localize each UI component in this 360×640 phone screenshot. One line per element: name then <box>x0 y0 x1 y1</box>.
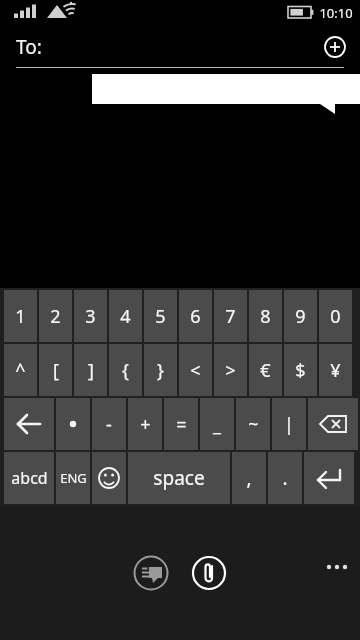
staticText: € <box>260 358 271 383</box>
staticText: abcd <box>11 467 48 489</box>
button[interactable]: 9 <box>284 290 317 342</box>
button[interactable]: 8 <box>249 290 282 342</box>
staticText: | <box>284 412 294 437</box>
staticText: 5 <box>155 304 166 329</box>
button[interactable]: Attach <box>191 555 227 591</box>
button[interactable]: 5 <box>144 290 177 342</box>
button[interactable]: Add recipient <box>320 32 350 62</box>
button[interactable]: 0 <box>319 290 352 342</box>
staticText: . <box>282 465 288 491</box>
button[interactable]: 4 <box>109 290 142 342</box>
button[interactable]: , <box>232 452 266 504</box>
button[interactable]: [ <box>39 344 72 396</box>
staticText: 2 <box>50 304 61 329</box>
button[interactable]: | <box>272 398 306 450</box>
button[interactable]: € <box>249 344 282 396</box>
button[interactable]: Send message <box>133 555 169 591</box>
button[interactable]: } <box>144 344 177 396</box>
staticText: } <box>157 358 164 383</box>
staticText: ENG <box>60 469 87 487</box>
button[interactable]: More options <box>322 558 352 588</box>
staticText: 10:10 <box>319 4 353 22</box>
button[interactable]: - <box>92 398 126 450</box>
button[interactable]: 1 <box>4 290 37 342</box>
staticText: 9 <box>295 304 306 329</box>
button[interactable]: abcd <box>4 452 54 504</box>
staticText: > <box>225 358 236 383</box>
button[interactable]: Previous page <box>4 398 54 450</box>
button[interactable]: < <box>179 344 212 396</box>
button[interactable]: Emoji <box>92 452 126 504</box>
button[interactable]: 3 <box>74 290 107 342</box>
staticText: { <box>122 358 129 383</box>
staticText: ~ <box>248 412 259 437</box>
staticText: _ <box>213 412 221 437</box>
staticText: + <box>140 412 151 437</box>
button[interactable]: ¥ <box>319 344 352 396</box>
staticText: 7 <box>225 304 236 329</box>
button[interactable]: 2 <box>39 290 72 342</box>
button[interactable]: $ <box>284 344 317 396</box>
staticText: , <box>246 465 252 491</box>
staticText: 8 <box>260 304 271 329</box>
button[interactable]: ^ <box>4 344 37 396</box>
staticText: [ <box>53 358 59 383</box>
staticText: ] <box>88 358 94 383</box>
button[interactable]: 7 <box>214 290 247 342</box>
staticText: 3 <box>85 304 96 329</box>
staticText: ¥ <box>330 358 341 383</box>
button[interactable]: ENG <box>56 452 90 504</box>
staticText: $ <box>295 358 306 383</box>
button[interactable]: > <box>214 344 247 396</box>
button[interactable]: _ <box>200 398 234 450</box>
button[interactable]: Backspace <box>308 398 358 450</box>
staticText: = <box>176 412 187 437</box>
staticText: 6 <box>190 304 201 329</box>
button[interactable]: ] <box>74 344 107 396</box>
staticText: To: <box>16 34 42 60</box>
button[interactable]: { <box>109 344 142 396</box>
button[interactable]: = <box>164 398 198 450</box>
button[interactable]: ~ <box>236 398 270 450</box>
button[interactable]: . <box>268 452 302 504</box>
staticText: - <box>106 412 112 437</box>
button[interactable]: + <box>128 398 162 450</box>
staticText: 4 <box>120 304 131 329</box>
button[interactable]: 6 <box>179 290 212 342</box>
button[interactable]: Enter <box>304 452 354 504</box>
staticText: < <box>190 358 201 383</box>
button[interactable]: space <box>128 452 230 504</box>
staticText: 0 <box>330 304 341 329</box>
staticText: space <box>153 465 205 491</box>
button[interactable]: Bullet <box>56 398 90 450</box>
staticText: 1 <box>15 304 26 329</box>
staticText: ^ <box>15 358 26 383</box>
